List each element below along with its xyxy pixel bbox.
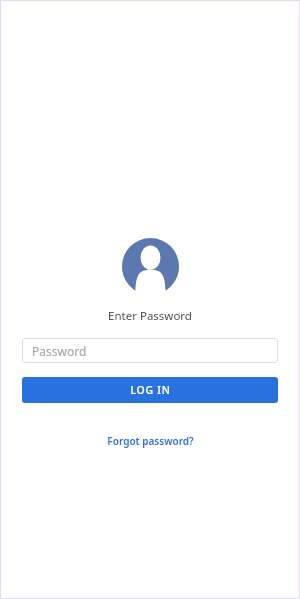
other: User avatar — [122, 238, 179, 295]
button[interactable]: Forgot password? — [101, 431, 200, 451]
button[interactable]: LOG IN — [22, 377, 278, 403]
staticText: Forgot password? — [107, 434, 194, 448]
button[interactable]: Password — [22, 338, 278, 363]
staticText: Enter Password — [108, 308, 192, 324]
staticText: Password — [32, 343, 87, 359]
staticText: LOG IN — [130, 383, 171, 397]
